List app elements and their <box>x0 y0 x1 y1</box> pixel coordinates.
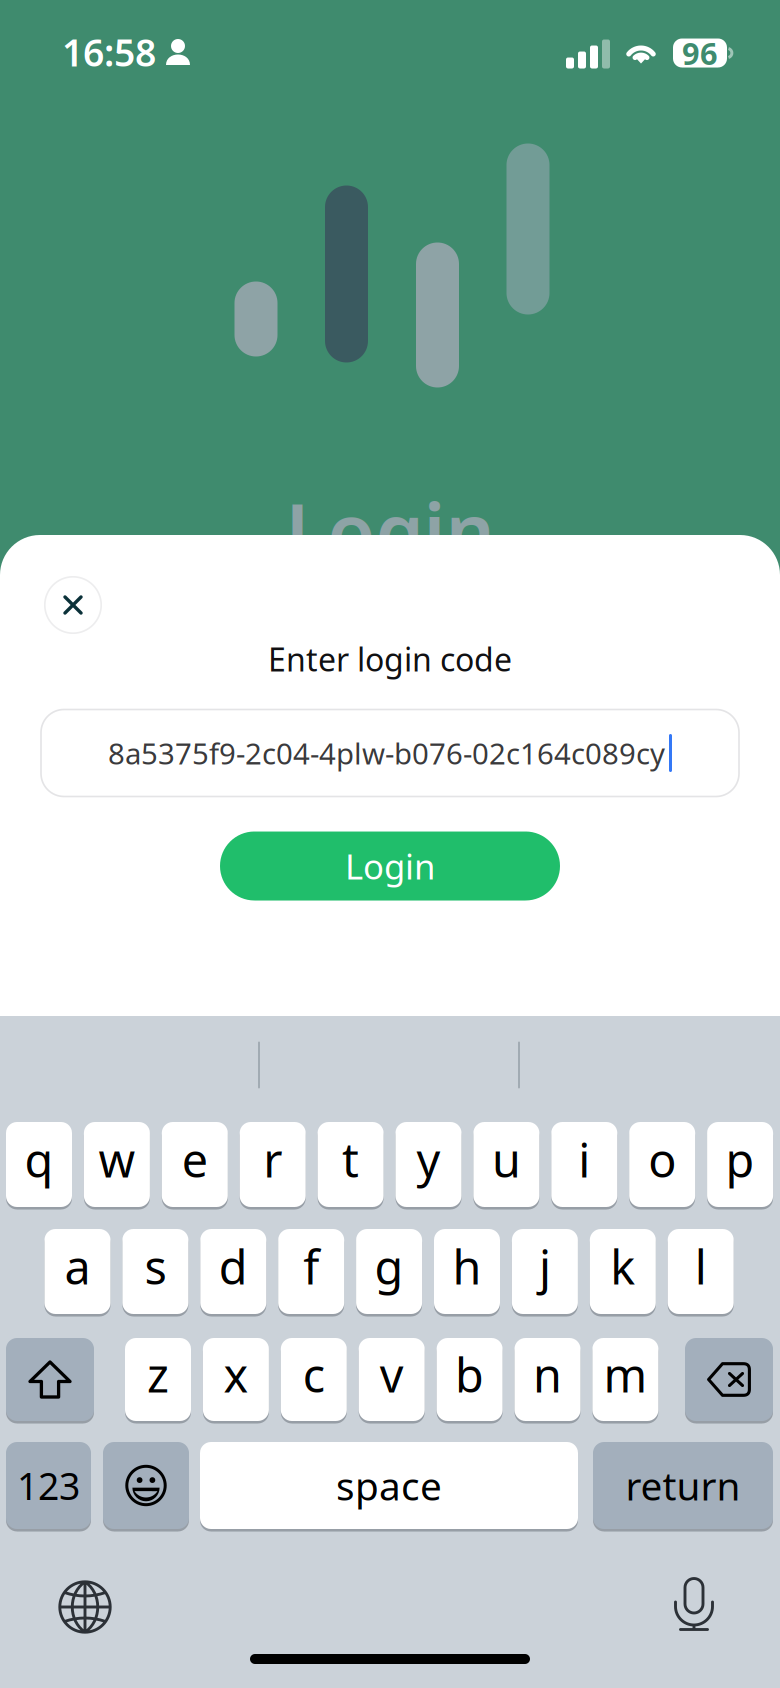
button[interactable]: n <box>514 1335 580 1423</box>
button[interactable]: w <box>84 1119 150 1209</box>
staticText: h <box>452 1235 481 1297</box>
staticText: a <box>64 1235 90 1297</box>
staticText: b <box>455 1343 484 1405</box>
staticText: return <box>625 1460 740 1511</box>
staticText: p <box>726 1128 755 1190</box>
staticText: e <box>182 1128 208 1190</box>
button[interactable]: Login <box>220 831 560 900</box>
button[interactable]: Dictate <box>658 1568 730 1640</box>
button[interactable]: e <box>162 1119 228 1209</box>
button[interactable]: o <box>629 1119 695 1209</box>
button[interactable]: m <box>592 1335 658 1423</box>
staticText: m <box>603 1343 647 1405</box>
staticText: w <box>98 1128 135 1190</box>
button[interactable]: Emoji <box>103 1439 189 1531</box>
staticText: n <box>533 1343 562 1405</box>
button[interactable]: Close <box>41 573 105 637</box>
staticText: c <box>303 1343 325 1405</box>
button[interactable]: v <box>359 1335 425 1423</box>
button[interactable]: k <box>590 1226 656 1316</box>
staticText: space <box>336 1460 442 1511</box>
staticText: g <box>375 1235 404 1297</box>
button[interactable]: u <box>473 1119 539 1209</box>
staticText: s <box>144 1235 166 1297</box>
staticText: d <box>219 1235 248 1297</box>
staticText: Enter login code <box>268 638 512 680</box>
button[interactable]: g <box>356 1226 422 1316</box>
staticText: r <box>263 1128 282 1190</box>
staticText: t <box>342 1128 359 1190</box>
button[interactable]: h <box>434 1226 500 1316</box>
staticText: q <box>24 1128 53 1190</box>
button[interactable]: i <box>551 1119 617 1209</box>
staticText: f <box>303 1235 319 1297</box>
button[interactable]: x <box>203 1335 269 1423</box>
staticText: x <box>223 1343 248 1405</box>
staticText: u <box>492 1128 521 1190</box>
staticText: i <box>578 1128 590 1190</box>
button[interactable]: Delete <box>685 1335 773 1423</box>
button[interactable]: y <box>395 1119 461 1209</box>
button[interactable]: f <box>278 1226 344 1316</box>
staticText: 123 <box>17 1461 80 1510</box>
staticText: Login <box>285 479 494 581</box>
staticText: 8a5375f9-2c04-4plw-b076-02c164c089cy <box>108 733 665 772</box>
button[interactable]: Return <box>593 1439 773 1531</box>
button[interactable]: r <box>240 1119 306 1209</box>
staticText: v <box>380 1343 404 1405</box>
button[interactable]: Shift <box>6 1335 94 1423</box>
staticText: 16:58 <box>62 27 156 77</box>
button[interactable]: s <box>122 1226 188 1316</box>
staticText: z <box>147 1343 169 1405</box>
button[interactable]: Space <box>200 1439 578 1531</box>
staticText: 96 <box>682 33 718 73</box>
button[interactable]: z <box>125 1335 191 1423</box>
staticText: k <box>610 1235 635 1297</box>
button[interactable]: Next keyboard <box>49 1571 121 1643</box>
button[interactable]: d <box>200 1226 266 1316</box>
staticText: o <box>648 1128 676 1190</box>
button[interactable]: Numbers <box>6 1439 91 1531</box>
button[interactable]: p <box>707 1119 773 1209</box>
staticText: y <box>416 1128 440 1190</box>
button[interactable]: a <box>44 1226 110 1316</box>
button[interactable]: j <box>512 1226 578 1316</box>
button[interactable]: l <box>668 1226 734 1316</box>
button[interactable]: b <box>437 1335 503 1423</box>
button[interactable]: c <box>281 1335 347 1423</box>
staticText: l <box>695 1235 707 1297</box>
staticText: j <box>539 1235 551 1297</box>
button[interactable]: t <box>318 1119 384 1209</box>
button[interactable]: q <box>6 1119 72 1209</box>
staticText: Login <box>345 843 435 889</box>
